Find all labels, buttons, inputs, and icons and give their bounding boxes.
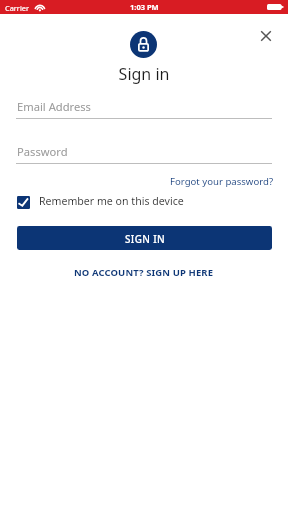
staticText: SIGN IN xyxy=(125,232,166,245)
staticText: NO ACCOUNT? SIGN UP HERE xyxy=(74,266,214,279)
staticText: Remember me on this device xyxy=(39,194,184,208)
button[interactable]: Remember me on this device xyxy=(17,194,272,208)
button[interactable]: Close xyxy=(255,25,276,46)
staticText: Email Address xyxy=(17,99,91,114)
staticText: 1:03 PM xyxy=(130,2,159,12)
staticText: Forgot your password? xyxy=(170,175,274,188)
staticText: Password xyxy=(17,144,68,159)
button[interactable]: SIGN IN xyxy=(17,226,272,250)
button[interactable]: NO ACCOUNT? SIGN UP HERE xyxy=(71,265,217,280)
button[interactable]: Forgot your password? xyxy=(168,175,276,188)
staticText: Carrier xyxy=(5,3,30,13)
staticText: Sign in xyxy=(0,63,288,85)
